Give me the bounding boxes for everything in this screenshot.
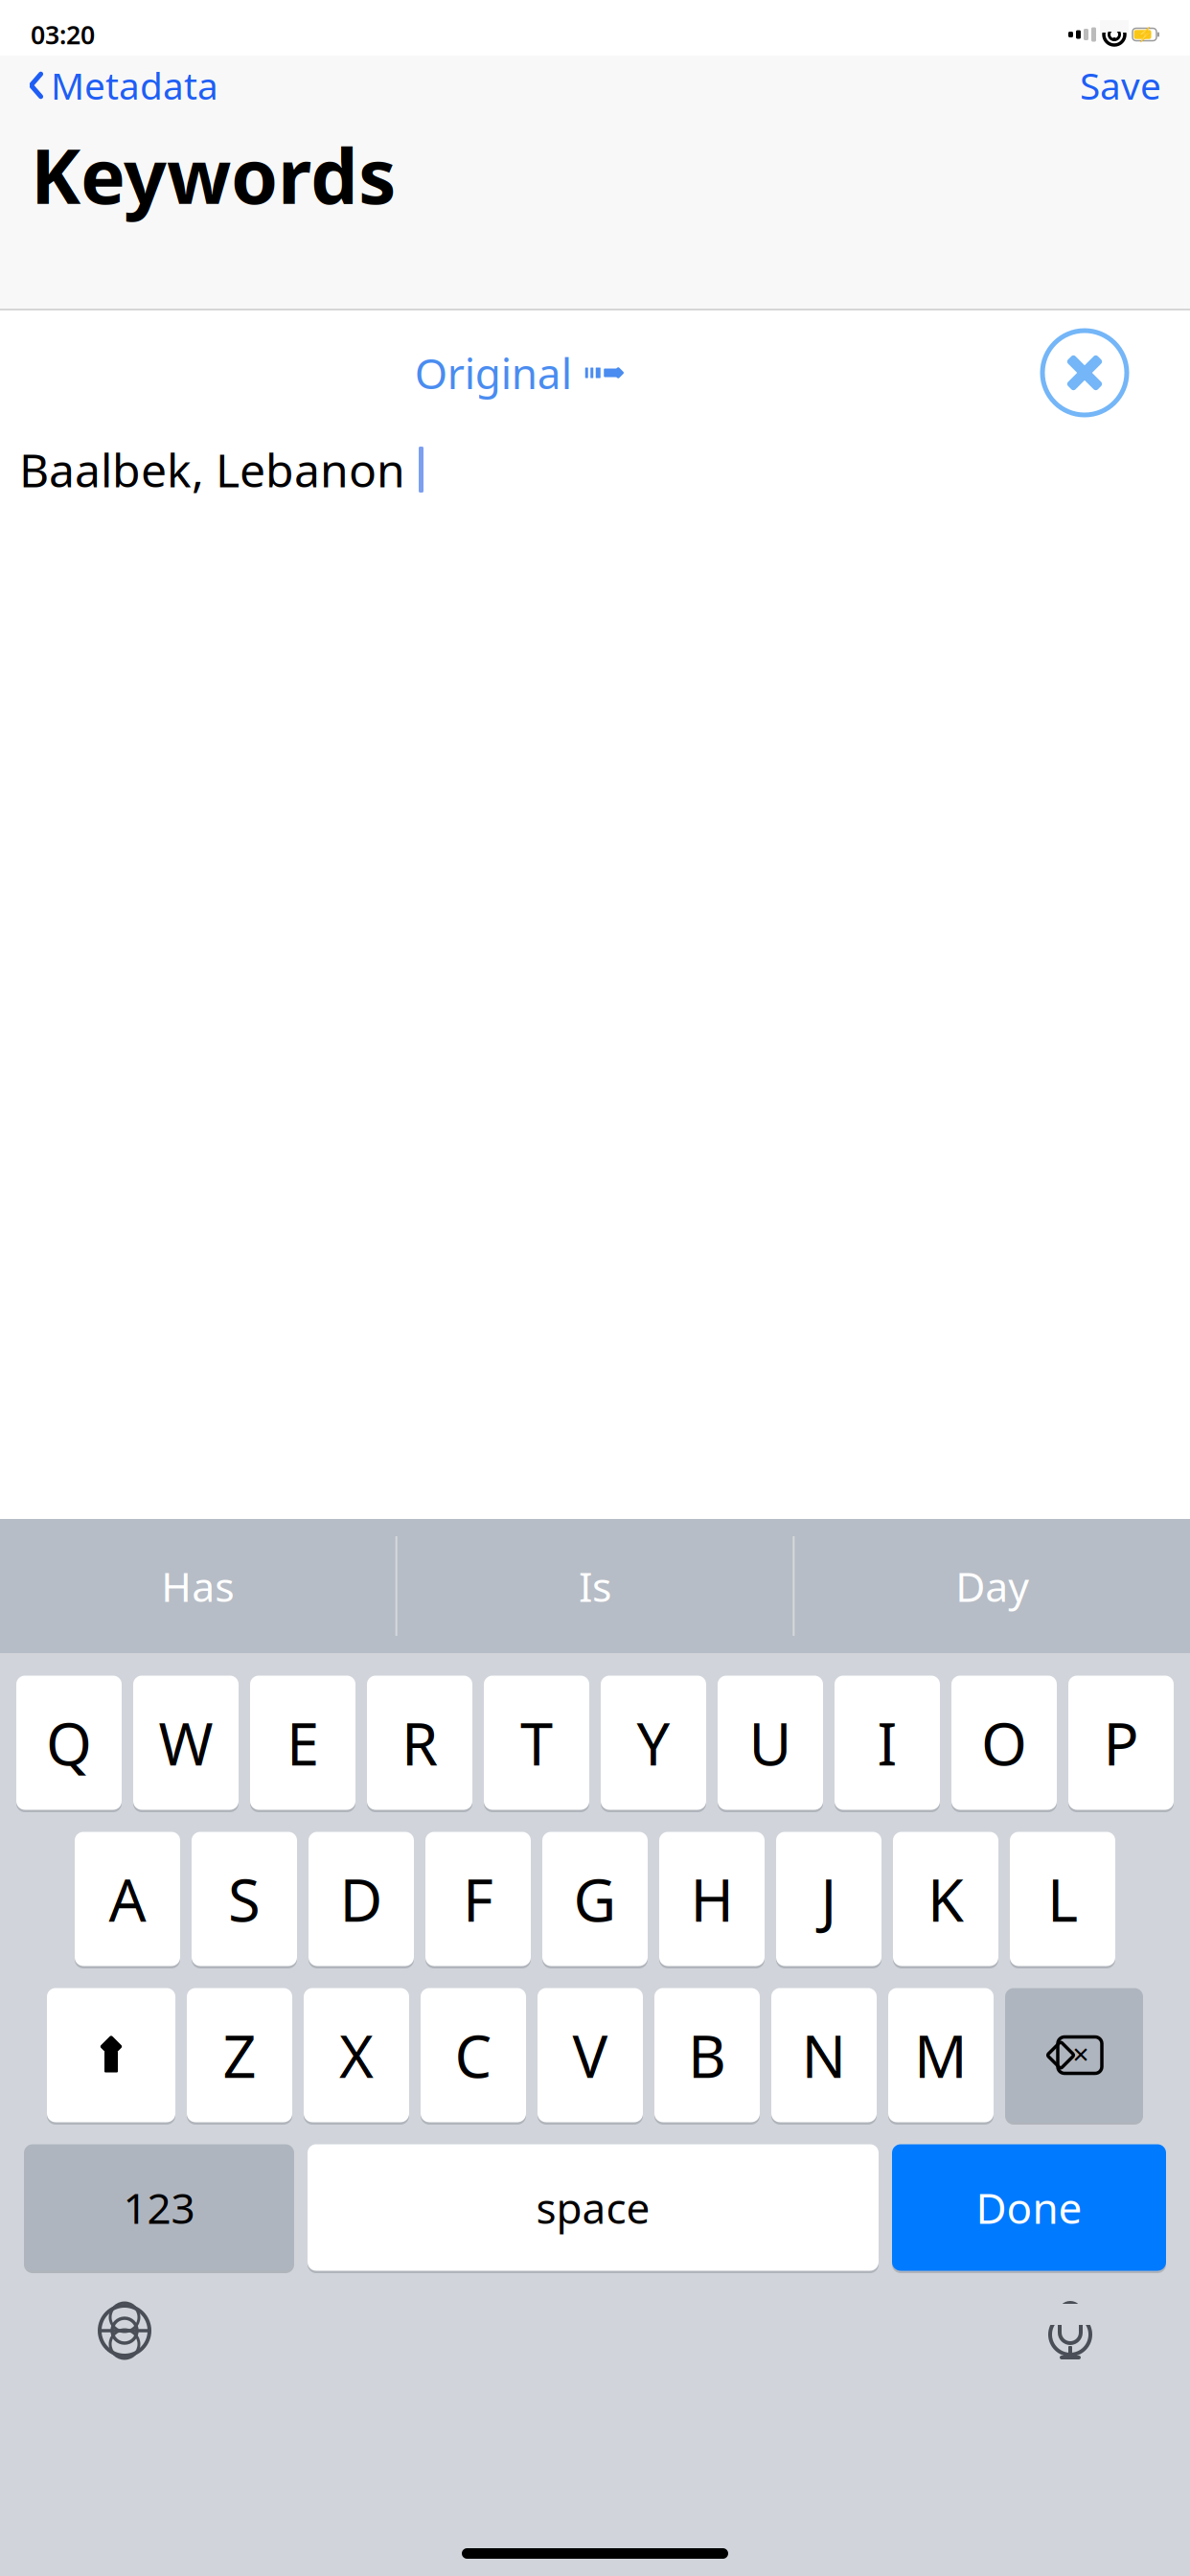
button[interactable]: Clear xyxy=(1039,327,1131,419)
staticText: Q xyxy=(46,1704,92,1782)
staticText: B xyxy=(688,2016,726,2094)
staticText: D xyxy=(340,1860,383,1938)
button[interactable]: U xyxy=(718,1674,823,1811)
button[interactable]: Is xyxy=(397,1519,793,1653)
staticText: ✕ xyxy=(1072,2043,1090,2067)
staticText: O xyxy=(981,1704,1027,1782)
staticText: T xyxy=(520,1704,553,1782)
button[interactable]: E xyxy=(250,1674,355,1811)
button[interactable]: M xyxy=(888,1987,994,2124)
staticText: L xyxy=(1047,1860,1078,1938)
staticText: S xyxy=(228,1860,261,1938)
staticText: Has xyxy=(161,1559,234,1613)
button[interactable]: N xyxy=(771,1987,877,2124)
button[interactable]: Original xyxy=(405,337,634,408)
staticText: Done xyxy=(976,2180,1082,2236)
button[interactable]: Next keyboard xyxy=(98,2304,151,2357)
button[interactable]: J xyxy=(776,1830,881,1967)
staticText: space xyxy=(536,2180,650,2236)
button[interactable]: 123 xyxy=(24,2143,294,2272)
button[interactable]: H xyxy=(659,1830,765,1967)
staticText: I xyxy=(877,1704,897,1782)
staticText: G xyxy=(573,1860,617,1938)
button[interactable]: Done xyxy=(892,2143,1166,2272)
staticText: V xyxy=(572,2016,608,2094)
button[interactable]: Shift xyxy=(47,1987,175,2124)
staticText: U xyxy=(749,1704,792,1782)
button[interactable]: X xyxy=(304,1987,409,2124)
staticText: ⚡ xyxy=(1136,26,1153,43)
staticText: E xyxy=(286,1704,319,1782)
button[interactable]: F xyxy=(425,1830,531,1967)
button[interactable]: A xyxy=(75,1830,180,1967)
button[interactable]: D xyxy=(309,1830,414,1967)
staticText: 123 xyxy=(123,2180,195,2236)
staticText: Is xyxy=(579,1559,611,1613)
button[interactable]: K xyxy=(893,1830,998,1967)
staticText: Keywords xyxy=(31,125,396,225)
staticText: H xyxy=(690,1860,733,1938)
staticText: J xyxy=(821,1860,837,1938)
staticText: Z xyxy=(223,2016,256,2094)
button[interactable]: space xyxy=(308,2143,879,2272)
staticText: M xyxy=(914,2016,968,2094)
staticText: Metadata xyxy=(51,61,218,110)
staticText: Baalbek, Lebanon xyxy=(19,439,405,500)
button[interactable]: Has xyxy=(0,1519,395,1653)
staticText: C xyxy=(455,2016,492,2094)
button[interactable]: Dictate xyxy=(1046,2300,1094,2361)
staticText: K xyxy=(927,1860,964,1938)
button[interactable]: Y xyxy=(601,1674,706,1811)
button[interactable]: G xyxy=(542,1830,648,1967)
button[interactable]: P xyxy=(1068,1674,1174,1811)
staticText: Day xyxy=(955,1559,1029,1613)
button[interactable]: V xyxy=(538,1987,643,2124)
button[interactable]: Z xyxy=(187,1987,292,2124)
button[interactable]: C xyxy=(421,1987,526,2124)
staticText: W xyxy=(159,1704,213,1782)
staticText: Original xyxy=(415,345,572,401)
staticText: Y xyxy=(637,1704,670,1782)
staticText: N xyxy=(801,2016,847,2094)
button[interactable]: I xyxy=(835,1674,940,1811)
button[interactable]: W xyxy=(133,1674,239,1811)
button[interactable]: Day xyxy=(795,1519,1190,1653)
button[interactable]: Save xyxy=(1068,55,1173,116)
button[interactable]: Q xyxy=(16,1674,122,1811)
staticText: F xyxy=(463,1860,493,1938)
staticText: 03:20 xyxy=(31,18,95,51)
staticText: Save xyxy=(1080,61,1161,110)
button[interactable]: R xyxy=(367,1674,472,1811)
staticText: A xyxy=(109,1860,146,1938)
button[interactable]: B xyxy=(654,1987,760,2124)
button[interactable]: Metadata xyxy=(17,55,230,116)
button[interactable]: O xyxy=(951,1674,1057,1811)
staticText: X xyxy=(339,2016,374,2094)
staticText: R xyxy=(401,1704,438,1782)
staticText: P xyxy=(1103,1704,1139,1782)
button[interactable]: L xyxy=(1010,1830,1115,1967)
button[interactable]: Delete xyxy=(1005,1987,1143,2124)
button[interactable]: T xyxy=(484,1674,589,1811)
button[interactable]: S xyxy=(192,1830,297,1967)
